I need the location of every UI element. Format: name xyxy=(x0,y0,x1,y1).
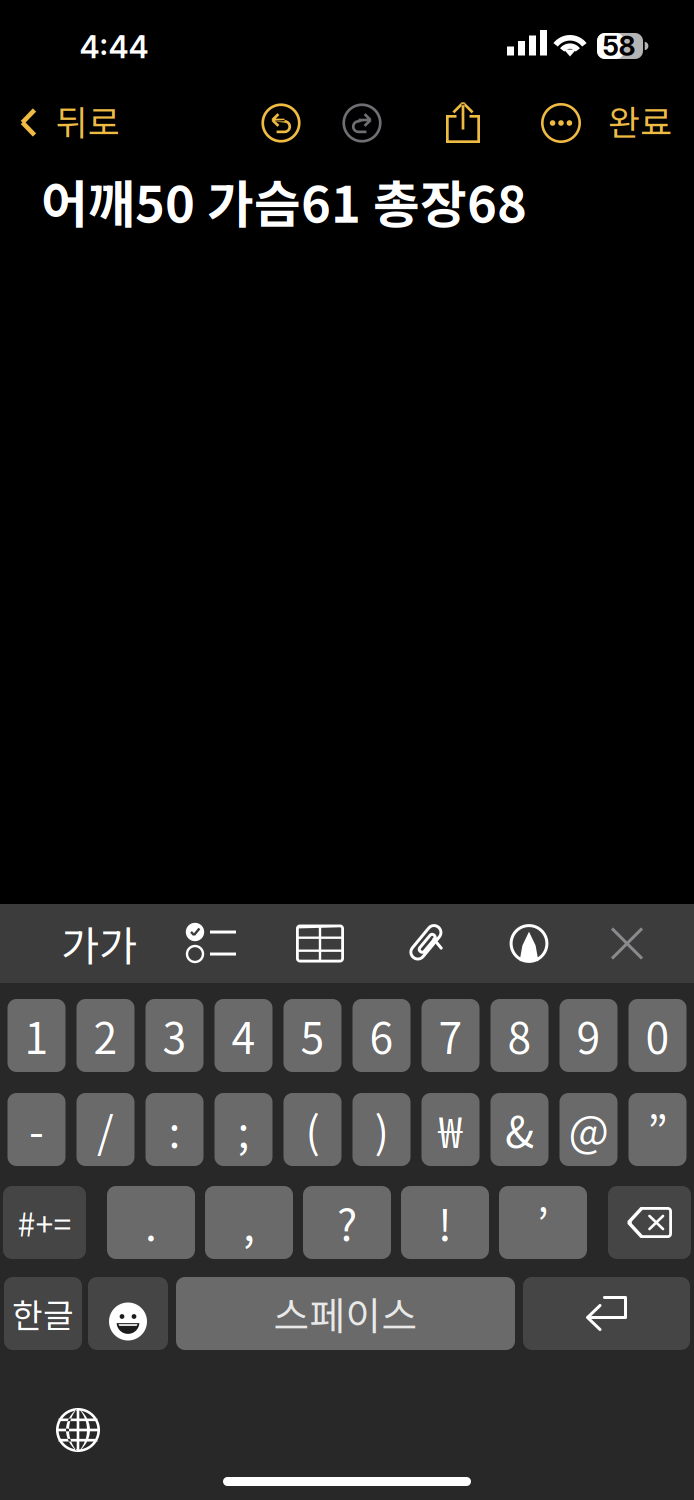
button[interactable]: 삭제 xyxy=(608,1186,691,1259)
button[interactable]: @ xyxy=(559,1093,617,1166)
staticText: / xyxy=(97,1099,114,1160)
button[interactable]: 다시 실행 xyxy=(331,88,393,158)
button[interactable]: 이모티콘 xyxy=(88,1277,168,1350)
button[interactable]: 첨부 파일 xyxy=(392,904,462,983)
button[interactable]: 6 xyxy=(352,999,410,1072)
button[interactable]: 8 xyxy=(490,999,548,1072)
button[interactable]: 다음 키보드 xyxy=(53,1405,103,1455)
staticText: ’ xyxy=(537,1192,549,1253)
button[interactable]: : xyxy=(145,1093,203,1166)
staticText: ! xyxy=(438,1192,452,1253)
button[interactable]: 뒤로 xyxy=(0,88,170,158)
staticText: 뒤로 xyxy=(56,95,120,146)
staticText: 58 xyxy=(602,30,635,62)
button[interactable]: 완료 xyxy=(608,88,694,158)
staticText: & xyxy=(505,1099,534,1160)
staticText: 4:44 xyxy=(79,28,148,65)
staticText: 3 xyxy=(162,1005,186,1066)
button[interactable]: ₩ xyxy=(421,1093,479,1166)
button[interactable]: 줄바꿈 xyxy=(523,1277,690,1350)
button[interactable]: 체크리스트 xyxy=(176,904,246,983)
button[interactable]: 5 xyxy=(283,999,341,1072)
button[interactable]: ! xyxy=(401,1186,489,1259)
button[interactable]: ? xyxy=(303,1186,391,1259)
button[interactable]: - xyxy=(7,1093,65,1166)
button[interactable]: 표 xyxy=(285,904,355,983)
staticText: 0 xyxy=(645,1005,669,1066)
staticText: ) xyxy=(374,1099,388,1160)
staticText: 5 xyxy=(300,1005,324,1066)
button[interactable]: 7 xyxy=(421,999,479,1072)
button[interactable]: 4 xyxy=(214,999,272,1072)
button[interactable]: . xyxy=(107,1186,195,1259)
button[interactable]: 9 xyxy=(559,999,617,1072)
button[interactable]: 0 xyxy=(628,999,686,1072)
staticText: 한글 xyxy=(12,1289,74,1338)
staticText: - xyxy=(29,1099,44,1160)
button[interactable]: , xyxy=(205,1186,293,1259)
button[interactable]: ( xyxy=(283,1093,341,1166)
button[interactable]: 3 xyxy=(145,999,203,1072)
staticText: 7 xyxy=(438,1005,462,1066)
staticText: ” xyxy=(647,1099,667,1160)
staticText: 8 xyxy=(507,1005,531,1066)
button[interactable]: #+= xyxy=(3,1186,86,1259)
staticText: ? xyxy=(337,1192,357,1253)
button[interactable]: 1 xyxy=(7,999,65,1072)
button[interactable]: / xyxy=(76,1093,134,1166)
button[interactable]: ; xyxy=(214,1093,272,1166)
button[interactable]: 가가 xyxy=(57,904,141,983)
staticText: 어깨50 가슴61 총장68 xyxy=(41,164,527,237)
button[interactable]: ) xyxy=(352,1093,410,1166)
staticText: 스페이스 xyxy=(273,1285,417,1341)
staticText: 1 xyxy=(24,1005,48,1066)
staticText: 9 xyxy=(576,1005,600,1066)
button[interactable]: ” xyxy=(628,1093,686,1166)
button[interactable]: 2 xyxy=(76,999,134,1072)
staticText: : xyxy=(168,1099,180,1160)
staticText: #+= xyxy=(17,1199,71,1246)
staticText: 4 xyxy=(231,1005,255,1066)
staticText: ; xyxy=(237,1099,249,1160)
staticText: 가가 xyxy=(61,914,137,973)
staticText: ₩ xyxy=(438,1099,462,1160)
button[interactable]: & xyxy=(490,1093,548,1166)
staticText: 6 xyxy=(369,1005,393,1066)
button[interactable]: 마크업 xyxy=(494,904,564,983)
button[interactable]: ’ xyxy=(499,1186,587,1259)
button[interactable]: 서식 닫기 xyxy=(592,904,662,983)
button[interactable]: 한글 xyxy=(4,1277,82,1350)
staticText: 2 xyxy=(93,1005,117,1066)
button[interactable]: 스페이스 xyxy=(176,1277,515,1350)
staticText: 완료 xyxy=(608,95,672,146)
staticText: , xyxy=(243,1192,255,1253)
button[interactable]: 더 보기 xyxy=(530,88,592,158)
staticText: @ xyxy=(568,1099,608,1160)
staticText: ( xyxy=(305,1099,319,1160)
button[interactable]: 실행 취소 xyxy=(250,88,312,158)
button[interactable]: 공유 xyxy=(432,88,494,158)
staticText: . xyxy=(145,1192,157,1253)
